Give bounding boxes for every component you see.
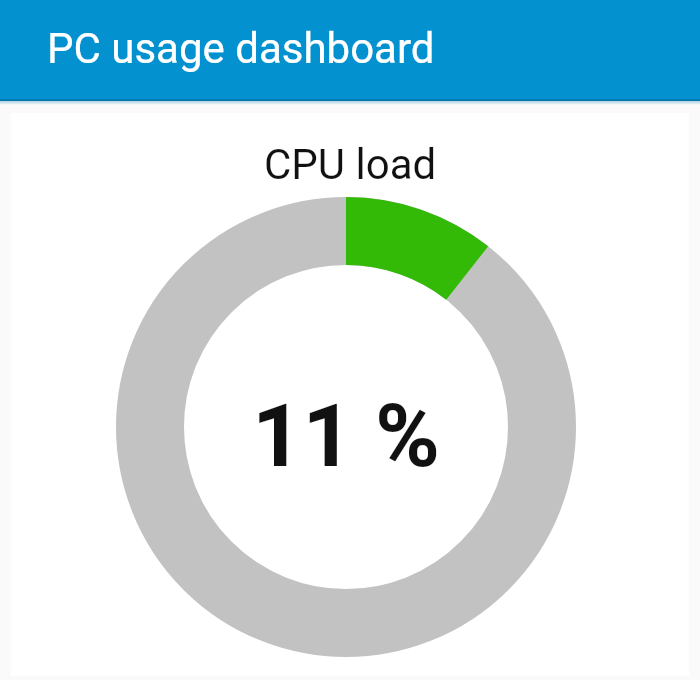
button[interactable]: PC usage dashboard (0, 0, 700, 101)
staticText: 11 % (252, 384, 440, 487)
staticText: CPU load (264, 140, 437, 189)
staticText: PC usage dashboard (47, 24, 435, 73)
